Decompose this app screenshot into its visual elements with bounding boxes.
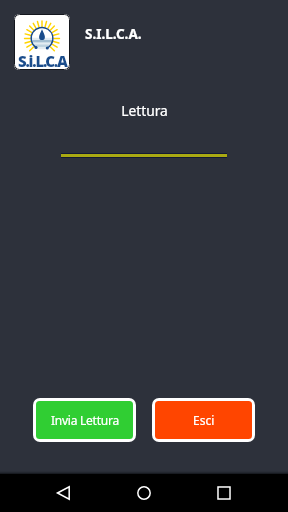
button[interactable]: Esci <box>155 401 252 439</box>
button[interactable]: Back <box>45 474 83 512</box>
staticText: Lettura <box>121 101 168 120</box>
staticText: S.i.L.C.A <box>18 51 67 70</box>
button[interactable]: Invia Lettura <box>36 401 133 439</box>
button[interactable]: Lettura <box>61 96 227 158</box>
staticText: Invia Lettura <box>51 412 119 428</box>
button[interactable]: S.I.L.C.A. logo <box>14 14 70 70</box>
staticText: S.I.L.C.A. <box>85 25 142 43</box>
button[interactable]: Recent apps <box>205 474 243 512</box>
button[interactable]: Home <box>125 474 163 512</box>
staticText: Esci <box>193 412 215 428</box>
